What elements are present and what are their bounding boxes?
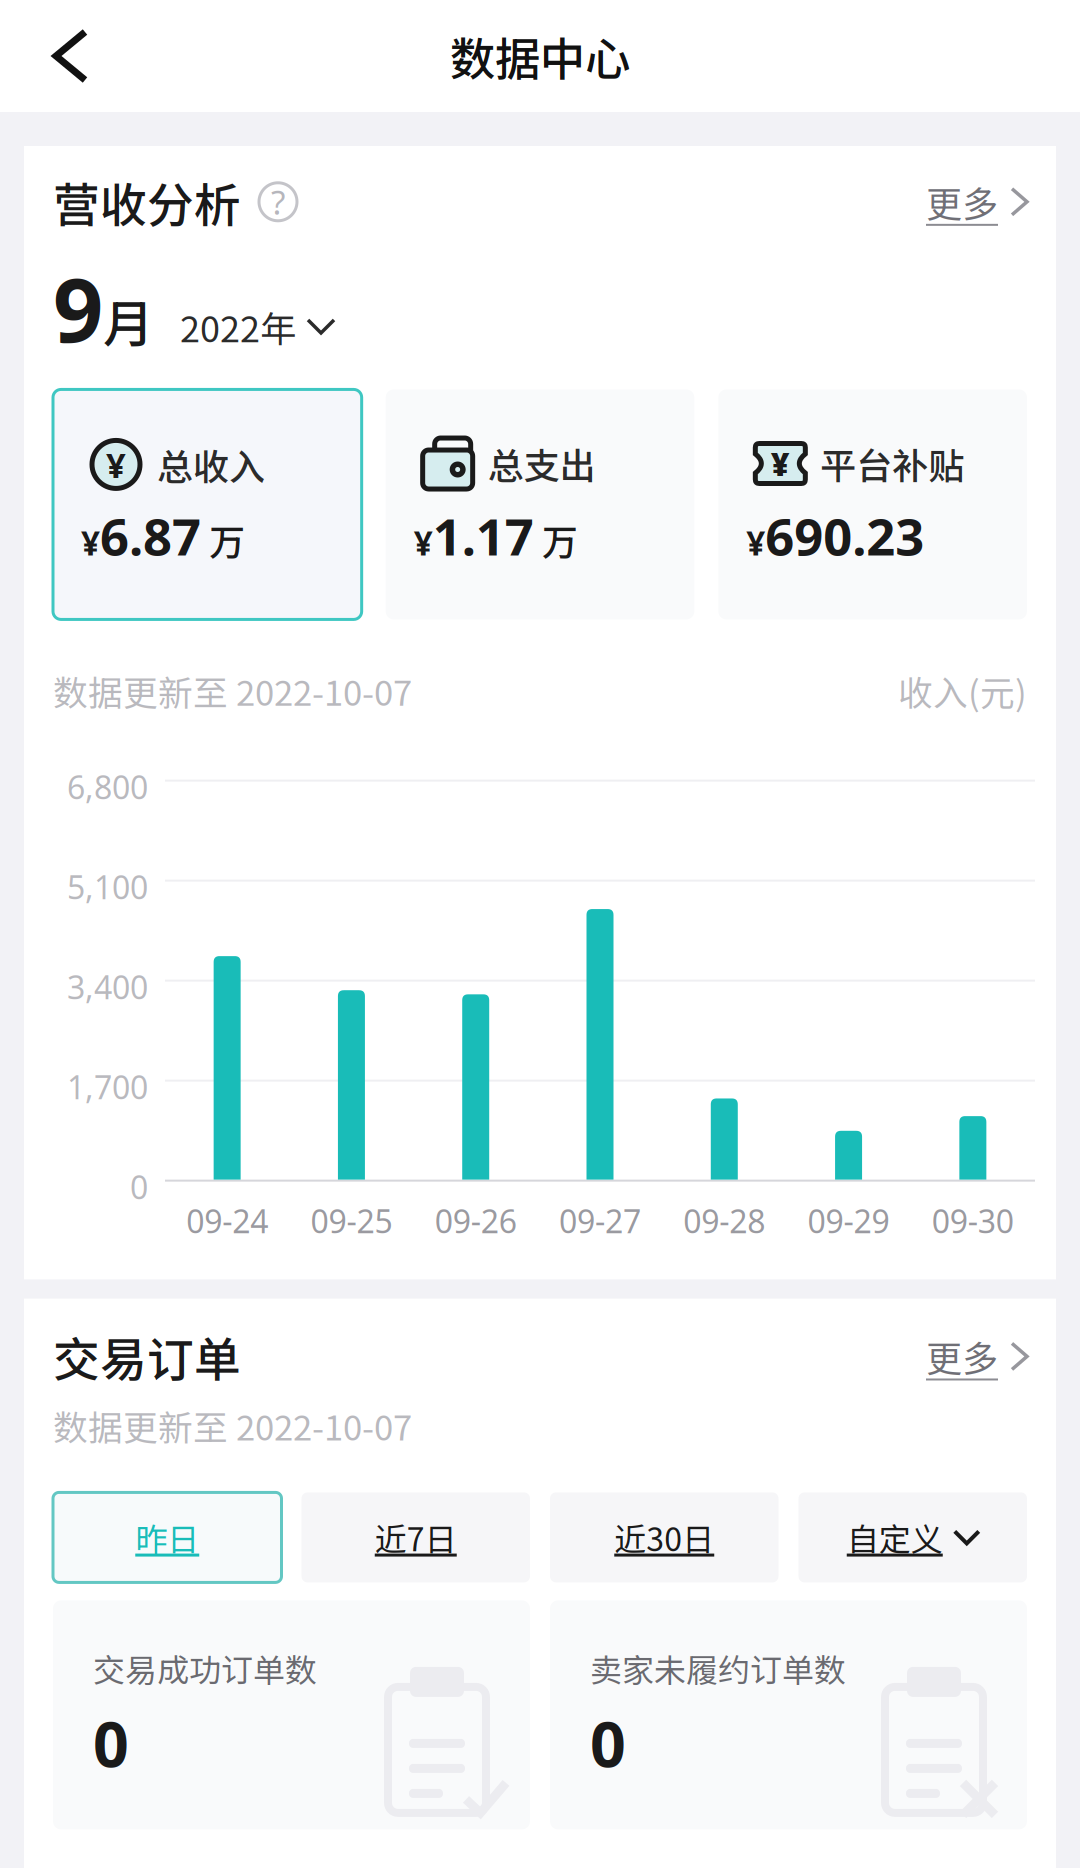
staticText: 09-29 xyxy=(808,1200,890,1242)
button[interactable]: 总支出 xyxy=(386,389,694,619)
staticText: 09-25 xyxy=(310,1200,392,1242)
staticText: 昨日 xyxy=(135,1514,199,1560)
button[interactable]: ¥ xyxy=(53,389,362,619)
staticText: ¥ xyxy=(771,442,790,485)
staticText: 交易订单 xyxy=(53,1323,241,1390)
staticText: 6.87 xyxy=(100,502,201,569)
staticText: 近7日 xyxy=(375,1514,457,1560)
button[interactable]: ¥ xyxy=(718,389,1027,619)
staticText: 近30日 xyxy=(614,1514,714,1560)
staticText: 1.17 xyxy=(433,502,534,569)
staticText: ? xyxy=(271,180,285,224)
staticText: 总支出 xyxy=(488,437,596,489)
staticText: 卖家未履约订单数 xyxy=(590,1645,846,1691)
staticText: ¥ xyxy=(81,520,100,565)
button[interactable]: 2022年 xyxy=(154,300,334,352)
button[interactable]: 近7日 xyxy=(301,1492,530,1582)
button[interactable]: Back xyxy=(0,10,115,102)
staticText: 自定义 xyxy=(847,1514,943,1560)
staticText: 数据中心 xyxy=(450,23,630,89)
staticText: ¥ xyxy=(746,520,765,565)
staticText: 6,800 xyxy=(67,766,148,808)
staticText: 2022年 xyxy=(180,300,296,352)
button[interactable]: 近30日 xyxy=(550,1492,778,1582)
staticText: 收入(元) xyxy=(898,665,1027,716)
staticText: 更多 xyxy=(926,176,998,228)
staticText: ¥ xyxy=(106,441,126,487)
staticText: 万 xyxy=(201,514,245,566)
button[interactable]: 更多 xyxy=(926,1324,1027,1388)
staticText: 5,100 xyxy=(67,866,148,908)
staticText: 更多 xyxy=(926,1330,998,1382)
staticText: 万 xyxy=(534,514,578,566)
staticText: 09-30 xyxy=(932,1200,1014,1242)
staticText: 0 xyxy=(130,1166,148,1208)
button[interactable]: 更多 xyxy=(926,170,1027,234)
staticText: 交易成功订单数 xyxy=(93,1645,317,1691)
staticText: 3,400 xyxy=(67,966,148,1008)
staticText: 总收入 xyxy=(157,438,265,490)
button[interactable]: 自定义 xyxy=(798,1492,1027,1582)
staticText: 09-28 xyxy=(683,1200,765,1242)
staticText: ¥ xyxy=(414,520,433,565)
staticText: 09-24 xyxy=(186,1200,268,1242)
staticText: 690.23 xyxy=(765,502,924,569)
staticText: 营收分析 xyxy=(53,168,241,236)
staticText: 数据更新至 2022-10-07 xyxy=(53,1400,412,1450)
staticText: 09-26 xyxy=(435,1200,517,1242)
staticText: 0 xyxy=(93,1701,129,1784)
staticText: 9 xyxy=(53,250,103,366)
staticText: 09-27 xyxy=(559,1200,641,1242)
staticText: 月 xyxy=(103,283,154,357)
staticText: 0 xyxy=(590,1701,626,1784)
button[interactable]: 昨日 xyxy=(53,1492,281,1582)
staticText: 平台补贴 xyxy=(820,437,964,489)
staticText: 数据更新至 2022-10-07 xyxy=(53,665,412,716)
staticText: 1,700 xyxy=(67,1066,148,1108)
